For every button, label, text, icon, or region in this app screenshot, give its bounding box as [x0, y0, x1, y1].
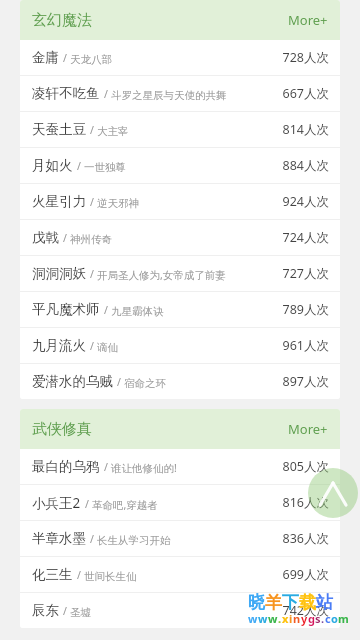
button[interactable]: 平凡魔术师 [20, 292, 340, 327]
staticText: / [90, 195, 94, 209]
button[interactable]: 戊戟 [20, 220, 340, 255]
staticText: g [308, 611, 315, 626]
staticText: 836人次 [282, 530, 329, 547]
staticText: 742人次 [282, 602, 329, 619]
staticText: w [248, 611, 258, 626]
staticText: 九月流火 [32, 337, 86, 354]
staticText: 小兵王2 [32, 494, 81, 512]
staticText: 789人次 [282, 301, 329, 318]
button[interactable]: Scroll to top [308, 468, 358, 518]
button[interactable]: 凌轩不吃鱼 [20, 76, 340, 111]
staticText: 大主宰 [97, 125, 129, 138]
staticText: / [90, 267, 94, 281]
staticText: 圣墟 [70, 606, 91, 619]
staticText: 814人次 [282, 121, 329, 138]
staticText: 载 [299, 592, 316, 613]
staticText: 逆天邪神 [97, 197, 139, 210]
staticText: / [63, 51, 67, 65]
staticText: More+ [288, 11, 328, 29]
staticText: 816人次 [282, 494, 329, 511]
staticText: n [293, 611, 301, 626]
staticText: 最白的乌鸦 [32, 458, 100, 475]
staticText: 戊戟 [32, 229, 59, 246]
staticText: 玄幻魔法 [32, 11, 92, 30]
staticText: 月如火 [32, 157, 73, 174]
staticText: . [278, 611, 282, 626]
staticText: 开局圣人修为,女帝成了前妻 [97, 268, 226, 282]
staticText: s [315, 611, 321, 626]
staticText: 谪仙 [97, 341, 118, 354]
staticText: 火星引力 [32, 193, 86, 210]
button[interactable]: 武侠修真 [20, 409, 340, 449]
staticText: 神州传奇 [70, 233, 112, 246]
staticText: w [268, 611, 278, 626]
staticText: x [282, 611, 289, 626]
staticText: 天龙八部 [70, 53, 112, 66]
button[interactable]: 最白的乌鸦 [20, 449, 340, 484]
staticText: 洞洞洞妖 [32, 265, 86, 282]
button[interactable]: 火星引力 [20, 184, 340, 219]
button[interactable]: 月如火 [20, 148, 340, 183]
staticText: 805人次 [282, 458, 329, 475]
staticText: y [301, 611, 308, 626]
staticText: 699人次 [282, 566, 329, 583]
staticText: / [104, 87, 108, 101]
staticText: 长生从学习开始 [97, 534, 171, 547]
button[interactable]: 金庸 [20, 40, 340, 75]
staticText: 平凡魔术师 [32, 301, 100, 318]
staticText: / [63, 231, 67, 245]
button[interactable]: 辰东 [20, 593, 340, 628]
staticText: 724人次 [282, 229, 329, 246]
button[interactable]: 玄幻魔法 [20, 0, 340, 40]
staticText: 下 [282, 592, 299, 613]
staticText: m [338, 611, 349, 626]
staticText: w [258, 611, 268, 626]
staticText: 728人次 [282, 49, 329, 66]
staticText: More+ [288, 420, 328, 438]
staticText: i [289, 611, 293, 626]
staticText: 884人次 [282, 157, 329, 174]
staticText: 727人次 [282, 265, 329, 282]
staticText: 辰东 [32, 602, 59, 619]
staticText: o [331, 611, 338, 626]
staticText: 武侠修真 [32, 420, 92, 439]
staticText: 革命吧,穿越者 [92, 498, 158, 512]
staticText: 924人次 [282, 193, 329, 210]
staticText: / [104, 303, 108, 317]
staticText: / [90, 123, 94, 137]
button[interactable]: 爱潜水的乌贼 [20, 364, 340, 399]
staticText: 宿命之环 [124, 377, 166, 390]
staticText: / [117, 375, 121, 389]
staticText: / [85, 497, 89, 511]
staticText: 金庸 [32, 49, 59, 66]
staticText: 961人次 [282, 337, 329, 354]
staticText: 世间长生仙 [84, 570, 137, 583]
button[interactable]: 洞洞洞妖 [20, 256, 340, 291]
staticText: 九星霸体诀 [111, 305, 164, 318]
staticText: 一世独尊 [84, 161, 126, 174]
staticText: . [321, 611, 325, 626]
button[interactable]: 化三生 [20, 557, 340, 592]
staticText: 斗罗之星辰与天使的共舞 [111, 89, 227, 102]
staticText: 897人次 [282, 373, 329, 390]
staticText: 爱潜水的乌贼 [32, 373, 113, 390]
button[interactable]: 九月流火 [20, 328, 340, 363]
staticText: / [77, 159, 81, 173]
staticText: / [77, 568, 81, 582]
staticText: / [90, 532, 94, 546]
staticText: 凌轩不吃鱼 [32, 85, 100, 102]
staticText: c [325, 611, 331, 626]
staticText: / [63, 604, 67, 618]
staticText: 羊 [265, 592, 282, 613]
staticText: 天蚕土豆 [32, 121, 86, 138]
staticText: 站 [316, 592, 333, 613]
staticText: 化三生 [32, 566, 73, 583]
button[interactable]: 天蚕土豆 [20, 112, 340, 147]
staticText: / [104, 460, 108, 474]
staticText: 谁让他修仙的! [111, 461, 177, 475]
button[interactable]: 半章水墨 [20, 521, 340, 556]
staticText: / [90, 339, 94, 353]
button[interactable]: 小兵王2 [20, 485, 340, 520]
staticText: 半章水墨 [32, 530, 86, 547]
staticText: 667人次 [282, 85, 329, 102]
